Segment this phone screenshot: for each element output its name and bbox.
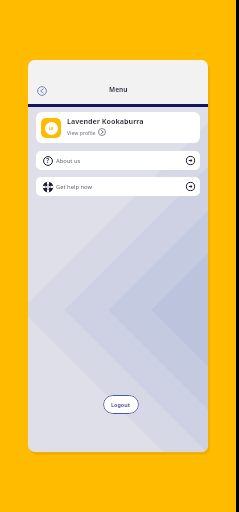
button[interactable]: Logout xyxy=(103,395,139,414)
button[interactable]: Get help now xyxy=(36,177,200,196)
staticText: Logout xyxy=(111,401,131,408)
staticText: About us xyxy=(56,157,81,165)
staticText: Menu xyxy=(109,85,128,94)
button[interactable]: ? xyxy=(36,151,200,170)
staticText: Get help now xyxy=(56,183,93,191)
staticText: LK xyxy=(49,126,54,131)
button[interactable]: Back xyxy=(31,80,53,102)
button[interactable]: LK xyxy=(36,112,200,143)
staticText: ? xyxy=(46,156,50,165)
staticText: Lavender Kookaburra xyxy=(67,116,144,126)
staticText: View profile xyxy=(67,129,96,136)
